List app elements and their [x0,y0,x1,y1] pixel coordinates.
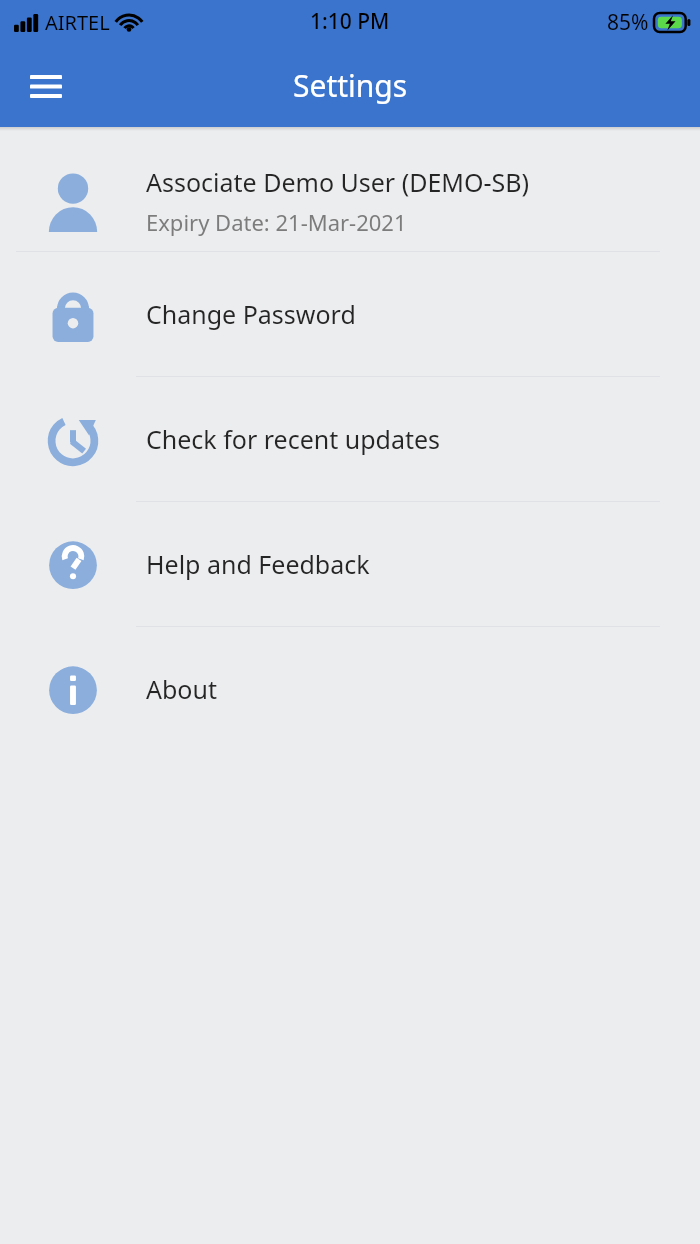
staticText: 1:10 PM [310,7,390,36]
staticText: Settings [293,65,408,106]
staticText: Change Password [146,297,356,331]
button[interactable]: Help and Feedback [0,502,700,626]
staticText: Expiry Date: 21-Mar-2021 [146,207,407,237]
button[interactable]: Check for recent updates [0,377,700,501]
staticText: Associate Demo User (DEMO-SB) [146,165,530,199]
button[interactable]: Associate Demo User (DEMO-SB) [0,150,700,251]
staticText: 85% [607,8,649,37]
button[interactable]: About [0,627,700,751]
staticText: AIRTEL [45,9,110,36]
button[interactable]: Change Password [0,252,700,376]
button[interactable]: Open navigation menu [16,58,76,114]
staticText: Help and Feedback [146,547,370,581]
staticText: Check for recent updates [146,422,441,456]
staticText: About [146,672,217,706]
